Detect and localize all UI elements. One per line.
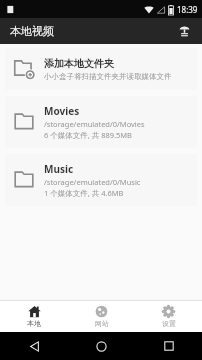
staticText: Music — [44, 162, 74, 176]
staticText: 18:39 — [177, 4, 198, 15]
staticText: 小小盒子将扫描文件夹并读取媒体文件 — [44, 72, 172, 81]
button[interactable]: Music — [5, 154, 197, 206]
button[interactable]: 本地 — [0, 301, 68, 332]
staticText: 1 个媒体文件, 共 4.6MB — [44, 188, 124, 198]
staticText: 网站 — [95, 319, 109, 328]
button[interactable]: 设置 — [135, 301, 202, 332]
staticText: 添加本地文件夹 — [44, 57, 114, 70]
button[interactable]: 添加本地文件夹 — [5, 48, 197, 90]
staticText: 6 个媒体文件, 共 889.5MB — [44, 130, 132, 140]
button[interactable]: Cast — [174, 21, 194, 41]
staticText: 设置 — [162, 319, 176, 328]
staticText: /storage/emulated/0/Movies — [44, 119, 145, 129]
staticText: 本地视频 — [10, 24, 54, 38]
button[interactable]: Movies — [5, 96, 197, 148]
button[interactable]: 网站 — [68, 301, 135, 332]
staticText: Movies — [44, 104, 80, 118]
staticText: /storage/emulated/0/Music — [44, 177, 141, 187]
staticText: 本地 — [27, 319, 41, 328]
